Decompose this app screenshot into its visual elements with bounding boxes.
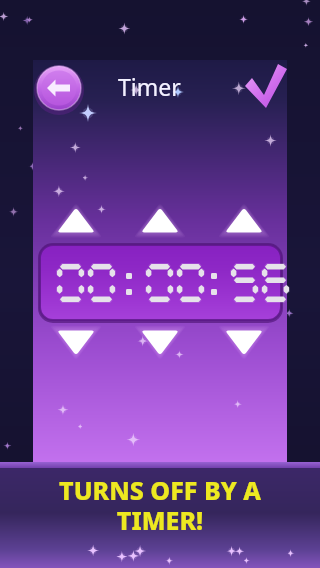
staticText: TURNS OFF BY A TIMER! [59, 473, 261, 537]
button[interactable]: Increase minutes [138, 204, 182, 236]
button[interactable]: Increase hours [54, 204, 98, 236]
button[interactable]: Decrease minutes [138, 327, 182, 359]
button[interactable]: Increase seconds [222, 204, 266, 236]
staticText: Timer [118, 71, 181, 102]
button[interactable]: Confirm [243, 62, 289, 110]
button[interactable]: Decrease seconds [222, 327, 266, 359]
button[interactable]: Back [37, 66, 81, 110]
button[interactable]: Decrease hours [54, 327, 98, 359]
